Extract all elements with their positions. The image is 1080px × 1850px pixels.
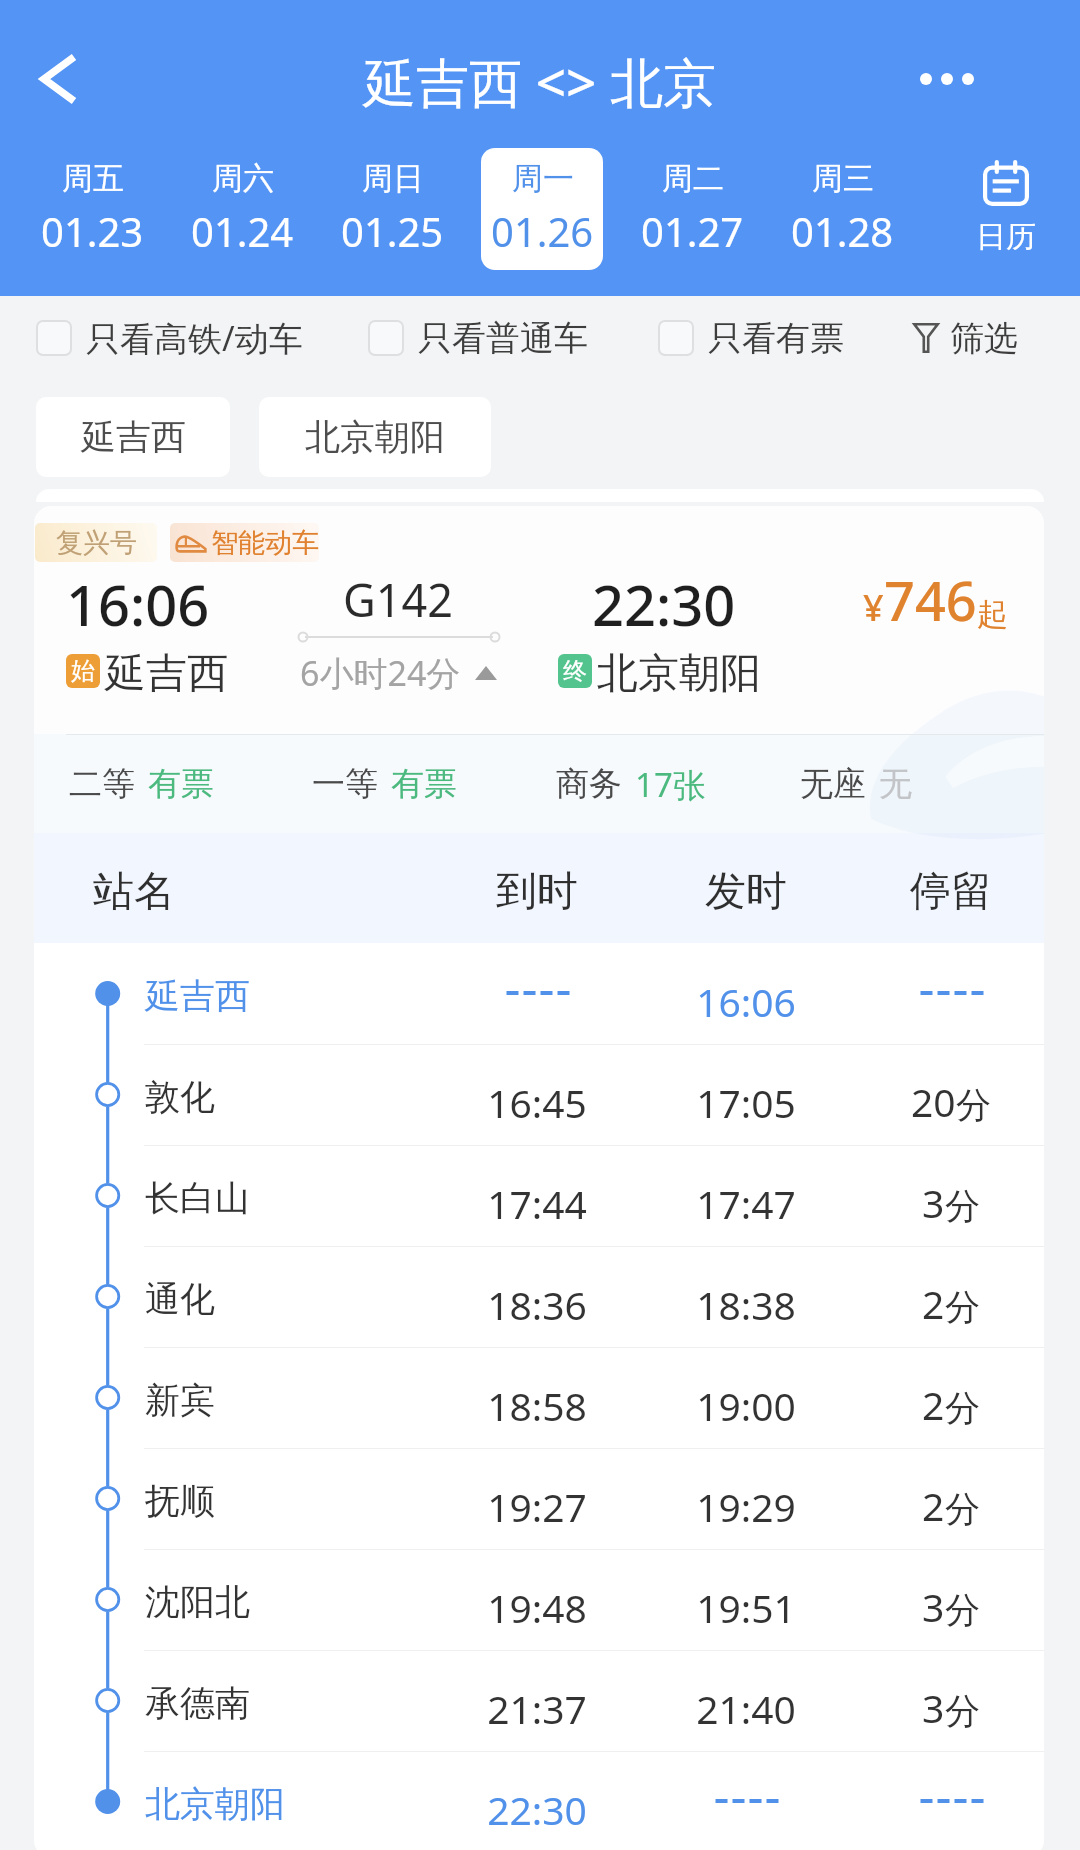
button[interactable]: More options bbox=[892, 24, 1002, 134]
staticText: 北京朝阳 bbox=[145, 1782, 285, 1826]
staticText: 发时 bbox=[671, 866, 821, 918]
staticText: 2 bbox=[922, 1479, 945, 1532]
button[interactable]: 二等 bbox=[69, 735, 214, 833]
button[interactable]: 周一 bbox=[481, 148, 603, 270]
staticText: 抚顺 bbox=[145, 1479, 215, 1523]
staticText: 01.28 bbox=[791, 204, 894, 258]
staticText: 01.24 bbox=[191, 204, 294, 258]
staticText: 20 bbox=[911, 1075, 956, 1128]
staticText: 6小时24分 bbox=[300, 650, 461, 696]
staticText: 有票 bbox=[148, 763, 214, 805]
staticText: 起 bbox=[977, 595, 1008, 634]
staticText: 19:00 bbox=[671, 1379, 821, 1432]
staticText: 18:58 bbox=[462, 1379, 612, 1432]
button[interactable]: 北京朝阳 bbox=[259, 397, 491, 477]
staticText: 17张 bbox=[635, 762, 706, 807]
staticText: 21:37 bbox=[462, 1682, 612, 1735]
button[interactable]: 周日 bbox=[331, 148, 453, 270]
button[interactable]: 只看普通车 bbox=[368, 290, 588, 386]
staticText: 16:45 bbox=[462, 1076, 612, 1129]
staticText: 停留 bbox=[876, 866, 1026, 918]
button[interactable]: 周五 bbox=[31, 148, 153, 270]
staticText: 周二 bbox=[662, 159, 724, 198]
staticText: 2 bbox=[922, 1378, 945, 1431]
staticText: 商务 bbox=[556, 763, 622, 805]
staticText: 北京朝阳 bbox=[305, 415, 445, 459]
staticText: 01.23 bbox=[41, 204, 144, 258]
button[interactable]: Back bbox=[3, 24, 113, 134]
staticText: 3 bbox=[922, 1176, 945, 1229]
button[interactable]: 一等 bbox=[312, 735, 457, 833]
button[interactable]: 通化 bbox=[34, 1246, 1044, 1347]
staticText: 筛选 bbox=[950, 317, 1018, 360]
staticText: 到时 bbox=[462, 866, 612, 918]
button[interactable]: 周二 bbox=[631, 148, 753, 270]
staticText: 长白山 bbox=[145, 1176, 250, 1220]
staticText: 承德南 bbox=[145, 1681, 250, 1725]
staticText: 分 bbox=[945, 1386, 980, 1430]
staticText: 周一 bbox=[512, 159, 574, 198]
staticText: 新宾 bbox=[145, 1378, 215, 1422]
button[interactable]: 长白山 bbox=[34, 1145, 1044, 1246]
button[interactable]: 商务 bbox=[556, 735, 706, 833]
button[interactable]: 周六 bbox=[181, 148, 303, 270]
staticText: 01.27 bbox=[641, 204, 744, 258]
button[interactable]: 只看高铁/动车 bbox=[36, 290, 303, 386]
button[interactable]: 沈阳北 bbox=[34, 1549, 1044, 1650]
button[interactable]: 敦化 bbox=[34, 1044, 1044, 1145]
staticText: 延吉西 bbox=[105, 648, 228, 700]
staticText: 17:44 bbox=[462, 1177, 612, 1230]
staticText: 16:06 bbox=[671, 975, 821, 1028]
staticText: 延吉西 <> 北京 bbox=[363, 45, 717, 117]
button[interactable]: Calendar bbox=[946, 148, 1066, 270]
button[interactable]: 北京朝阳 bbox=[34, 1751, 1044, 1850]
staticText: 16:06 bbox=[66, 566, 210, 642]
button[interactable]: 只看有票 bbox=[658, 290, 844, 386]
staticText: 延吉西 bbox=[145, 974, 250, 1018]
staticText: 17:47 bbox=[671, 1177, 821, 1230]
staticText: 周六 bbox=[212, 159, 274, 198]
staticText: 周日 bbox=[362, 159, 424, 198]
staticText: 21:40 bbox=[671, 1682, 821, 1735]
staticText: 延吉西 bbox=[81, 415, 186, 459]
staticText: 18:36 bbox=[462, 1278, 612, 1331]
staticText: 复兴号 bbox=[56, 526, 137, 560]
staticText: 无座 bbox=[800, 763, 866, 805]
staticText: 2 bbox=[922, 1277, 945, 1330]
staticText: G142 bbox=[298, 569, 498, 630]
staticText: 只看有票 bbox=[708, 317, 844, 360]
staticText: 01.26 bbox=[491, 204, 594, 258]
staticText: 19:48 bbox=[462, 1581, 612, 1634]
staticText: 沈阳北 bbox=[145, 1580, 250, 1624]
staticText: 北京朝阳 bbox=[597, 648, 761, 700]
staticText: 分 bbox=[956, 1083, 991, 1127]
staticText: 分 bbox=[945, 1588, 980, 1632]
staticText: 周五 bbox=[62, 159, 124, 198]
button[interactable]: 新宾 bbox=[34, 1347, 1044, 1448]
staticText: 22:30 bbox=[592, 566, 736, 642]
button[interactable]: 无座 bbox=[800, 735, 912, 833]
button[interactable]: 筛选 bbox=[913, 290, 1080, 386]
button[interactable]: 周三 bbox=[781, 148, 903, 270]
button[interactable]: 抚顺 bbox=[34, 1448, 1044, 1549]
staticText: 智能动车 bbox=[211, 526, 319, 560]
staticText: 终 bbox=[563, 656, 587, 686]
staticText: 二等 bbox=[69, 763, 135, 805]
staticText: 无 bbox=[879, 763, 912, 805]
staticText: 19:51 bbox=[671, 1581, 821, 1634]
staticText: 17:05 bbox=[671, 1076, 821, 1129]
staticText: 3 bbox=[922, 1681, 945, 1734]
staticText: ¥ bbox=[863, 583, 884, 632]
button[interactable]: 延吉西 bbox=[36, 397, 230, 477]
staticText: 18:38 bbox=[671, 1278, 821, 1331]
staticText: 敦化 bbox=[145, 1075, 215, 1119]
staticText: 22:30 bbox=[462, 1783, 612, 1836]
button[interactable]: 延吉西 bbox=[34, 943, 1044, 1044]
staticText: 3 bbox=[922, 1580, 945, 1633]
staticText: 周三 bbox=[812, 159, 874, 198]
button[interactable]: 承德南 bbox=[34, 1650, 1044, 1751]
staticText: 分 bbox=[945, 1487, 980, 1531]
staticText: 19:29 bbox=[671, 1480, 821, 1533]
staticText: 日历 bbox=[976, 218, 1036, 256]
staticText: 通化 bbox=[145, 1277, 215, 1321]
